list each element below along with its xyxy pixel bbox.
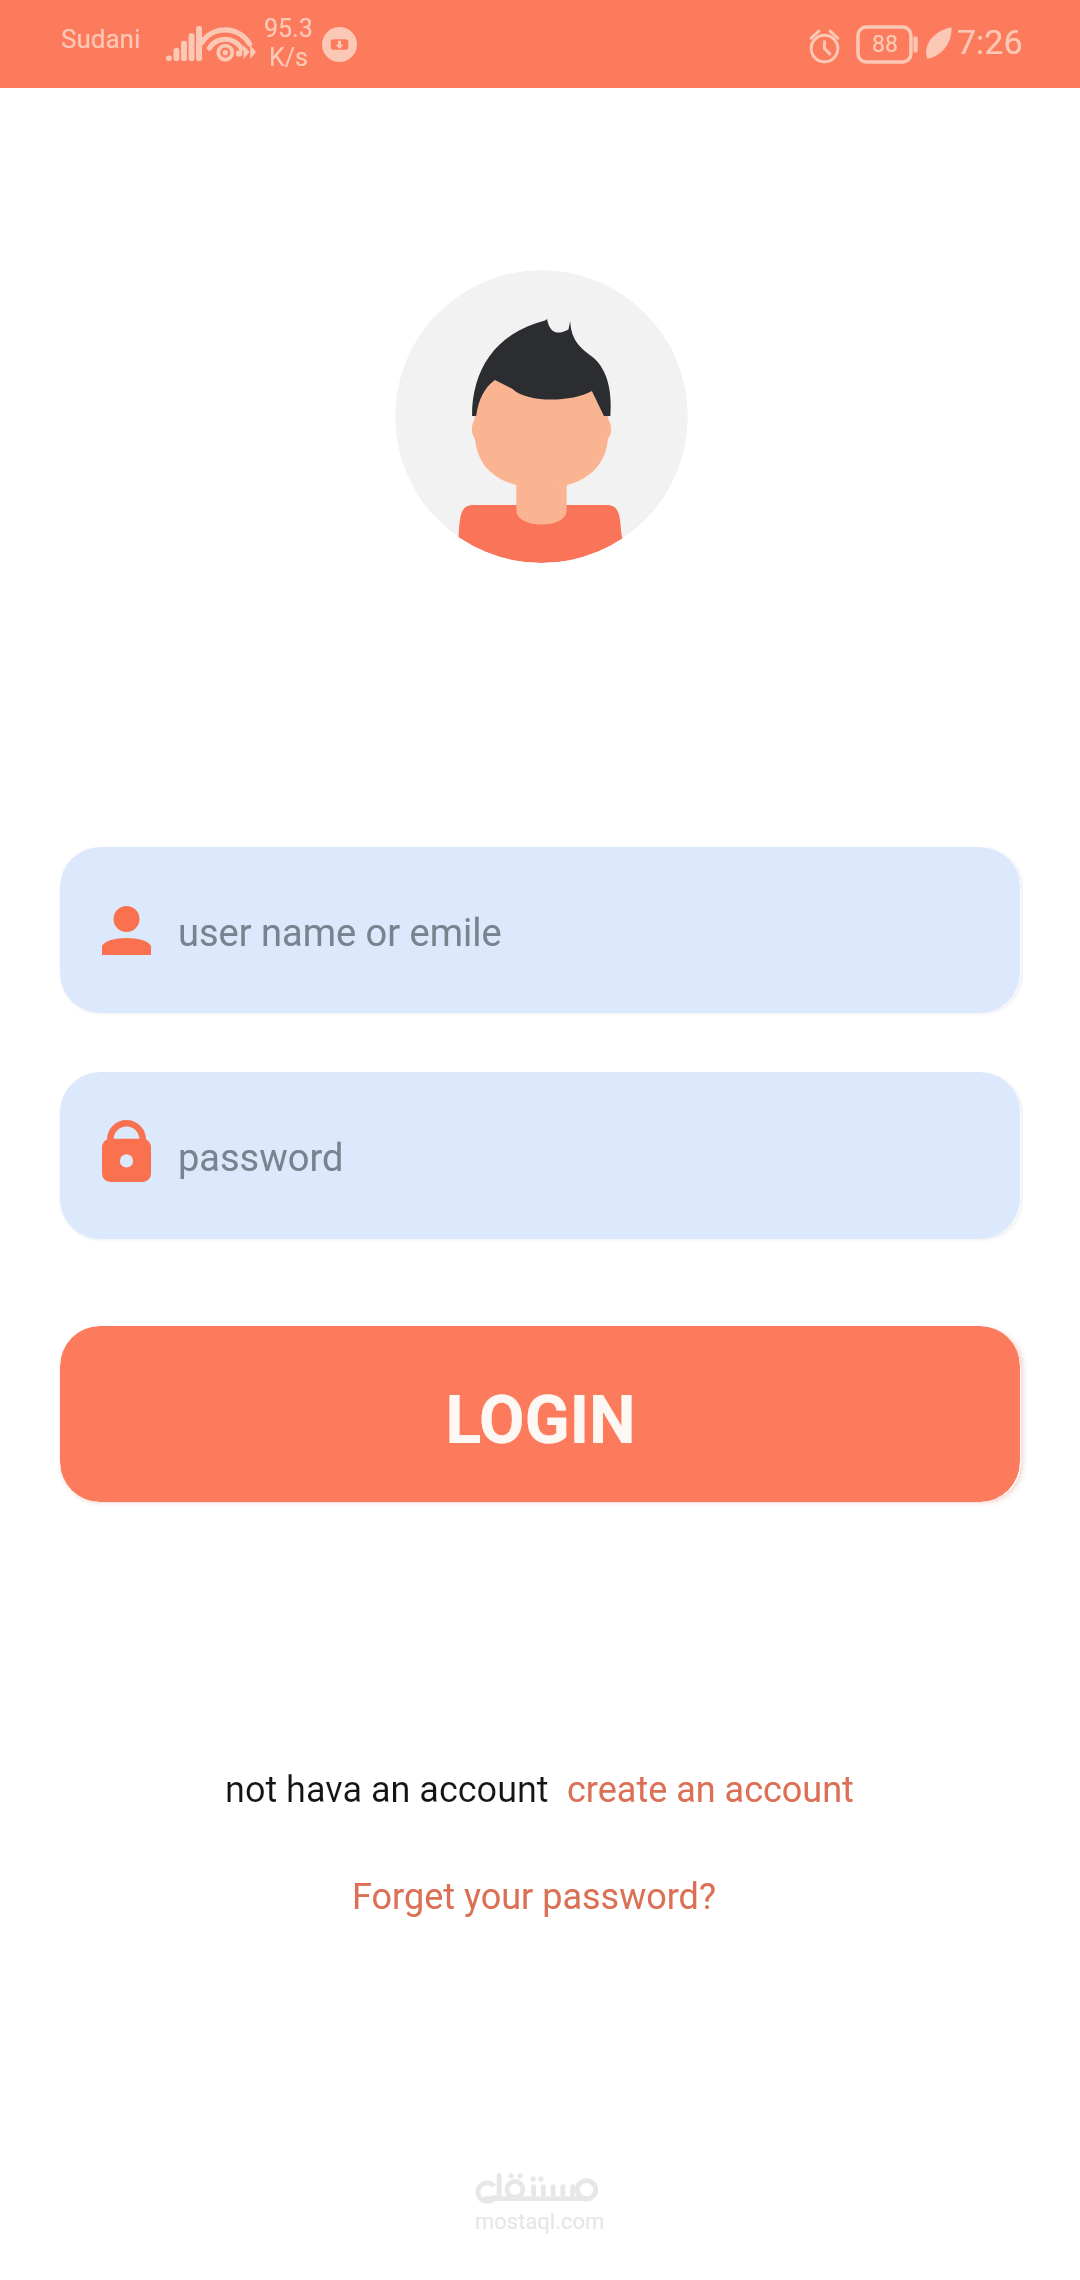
staticText: 88 xyxy=(872,31,898,58)
staticText: Forget your password? xyxy=(352,1876,716,1918)
staticText: user name or emile xyxy=(178,911,502,956)
staticText: 95.3 xyxy=(264,14,313,43)
staticText: LOGIN xyxy=(445,1382,636,1459)
staticText: mostaql.com xyxy=(475,2209,605,2235)
button[interactable]: create an account xyxy=(567,1769,854,1811)
button[interactable]: LOGIN xyxy=(60,1326,1020,1502)
staticText: create an account xyxy=(567,1769,854,1811)
staticText: not hava an account xyxy=(225,1769,567,1811)
staticText: 7:26 xyxy=(957,22,1023,62)
staticText: K/s xyxy=(269,43,308,72)
button[interactable]: user name or emile xyxy=(60,847,1020,1013)
button[interactable]: password xyxy=(60,1072,1020,1239)
button[interactable]: Forget your password? xyxy=(352,1876,716,1918)
staticText: password xyxy=(178,1136,344,1181)
button[interactable]: Profile photo xyxy=(395,270,688,563)
staticText: Sudani xyxy=(61,24,141,54)
